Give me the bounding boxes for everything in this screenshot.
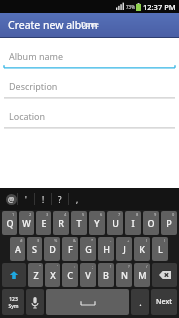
staticText: 2 xyxy=(29,212,32,217)
staticText: J xyxy=(123,243,126,255)
button[interactable]: Description xyxy=(0,75,179,99)
staticText: 1 xyxy=(12,212,15,217)
staticText: 7 xyxy=(118,212,121,217)
staticText: S xyxy=(32,243,37,255)
staticText: N xyxy=(121,269,128,281)
staticText: F xyxy=(68,243,73,255)
button[interactable]: 9 xyxy=(143,211,159,235)
button[interactable]: Location xyxy=(0,105,179,129)
button[interactable]: 3 xyxy=(36,211,51,235)
button[interactable]: ( xyxy=(134,237,150,261)
button[interactable]: ) xyxy=(152,237,168,261)
staticText: E xyxy=(41,217,47,229)
button[interactable]: $ xyxy=(27,237,42,261)
button[interactable]: @ xyxy=(6,194,17,205)
button[interactable]: ! xyxy=(98,263,114,287)
staticText: I xyxy=(131,217,135,229)
staticText: Y xyxy=(94,217,100,229)
button[interactable]: & xyxy=(62,237,78,261)
staticText: @ xyxy=(8,195,15,205)
staticText: Z xyxy=(33,269,39,281)
staticText: 5 xyxy=(82,212,85,217)
button[interactable]: Voice input xyxy=(26,289,44,315)
button[interactable]: + xyxy=(116,237,132,261)
staticText: $ xyxy=(37,238,40,243)
staticText: L xyxy=(158,243,163,255)
staticText: Album name xyxy=(9,50,64,62)
staticText: A xyxy=(15,243,21,255)
staticText: ! xyxy=(42,194,45,205)
button[interactable]: 8 xyxy=(125,211,141,235)
button[interactable]: 123 Sym xyxy=(2,289,24,315)
button[interactable]: 6 xyxy=(89,211,105,235)
staticText: ( xyxy=(146,238,148,243)
staticText: Next xyxy=(156,297,172,307)
staticText: % xyxy=(54,238,58,243)
staticText: Done xyxy=(81,20,99,30)
staticText: 8 xyxy=(136,212,139,217)
button[interactable]: 4 xyxy=(53,211,69,235)
staticText: , xyxy=(76,194,79,205)
button[interactable]: Shift xyxy=(2,263,26,287)
button[interactable]: * xyxy=(80,237,96,261)
staticText: * xyxy=(91,238,94,243)
staticText: G xyxy=(85,243,92,255)
button[interactable]: Next xyxy=(151,289,177,315)
button[interactable]: . xyxy=(131,289,149,315)
staticText: 9 xyxy=(154,212,157,217)
button[interactable]: # xyxy=(10,237,25,261)
button[interactable]: : xyxy=(62,263,78,287)
staticText: 3 xyxy=(46,212,49,217)
button[interactable]: 0 xyxy=(161,211,177,235)
staticText: : xyxy=(74,264,76,269)
button[interactable]: ! xyxy=(35,189,51,209)
staticText: T xyxy=(76,217,82,229)
staticText: Description xyxy=(9,80,58,92)
staticText: R xyxy=(58,217,64,229)
button[interactable]: 5 xyxy=(71,211,87,235)
staticText: # xyxy=(20,238,23,243)
button[interactable]: ; xyxy=(80,263,96,287)
staticText: ! xyxy=(110,264,112,269)
staticText: O xyxy=(147,217,155,229)
staticText: & xyxy=(73,238,76,243)
button[interactable]: 7 xyxy=(107,211,123,235)
staticText: K xyxy=(139,243,145,255)
staticText: ' xyxy=(57,264,58,269)
staticText: V xyxy=(85,269,91,281)
staticText: H xyxy=(103,243,110,255)
staticText: 73% xyxy=(126,4,135,10)
staticText: D xyxy=(49,243,56,255)
staticText: 12:37 PM xyxy=(143,2,176,12)
button[interactable]: Album name xyxy=(0,45,179,69)
staticText: 0 xyxy=(172,212,175,217)
button[interactable]: 2 xyxy=(19,211,34,235)
button[interactable]: 1 xyxy=(2,211,17,235)
button[interactable]: " xyxy=(28,263,43,287)
staticText: W xyxy=(22,217,31,229)
staticText: X xyxy=(50,269,56,281)
staticText: C xyxy=(67,269,73,281)
button[interactable]: Backspace xyxy=(152,263,177,287)
staticText: ; xyxy=(92,264,94,269)
button[interactable]: - xyxy=(98,237,114,261)
staticText: ) xyxy=(164,238,166,243)
button[interactable]: ? xyxy=(52,189,68,209)
staticText: - xyxy=(110,238,112,243)
staticText: . xyxy=(139,296,142,308)
button[interactable]: Space xyxy=(46,289,129,315)
button[interactable]: / xyxy=(134,263,150,287)
button[interactable]: ' xyxy=(18,189,34,209)
staticText: Create new album xyxy=(8,18,98,32)
staticText: " xyxy=(39,264,41,269)
button[interactable]: ? xyxy=(116,263,132,287)
button[interactable]: ' xyxy=(45,263,60,287)
staticText: 123 Sym xyxy=(8,296,19,309)
staticText: ' xyxy=(25,194,27,205)
staticText: P xyxy=(166,217,172,229)
staticText: 4 xyxy=(64,212,67,217)
staticText: Location xyxy=(9,110,46,122)
button[interactable]: % xyxy=(44,237,60,261)
button[interactable]: Done xyxy=(0,13,179,37)
button[interactable]: , xyxy=(69,189,85,209)
